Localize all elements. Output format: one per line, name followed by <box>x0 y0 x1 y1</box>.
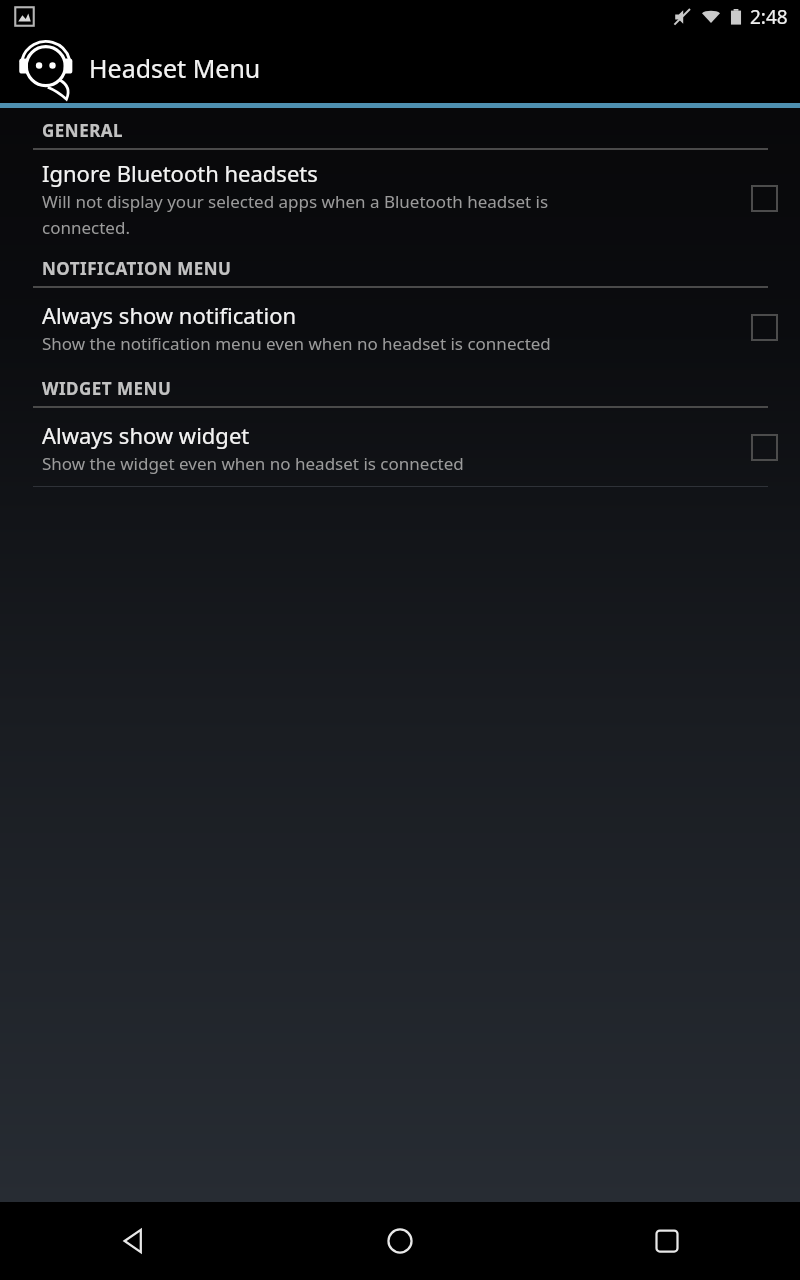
staticText: Show the notification menu even when no … <box>42 332 551 355</box>
button[interactable]: Always show notification <box>0 288 800 366</box>
staticText: Show the widget even when no headset is … <box>42 452 464 475</box>
staticText: Ignore Bluetooth headsets <box>42 158 318 188</box>
button[interactable]: Home <box>363 1204 437 1278</box>
staticText: Headset Menu <box>89 51 261 85</box>
button[interactable]: Always show widget <box>0 408 800 486</box>
staticText: 2:48 <box>750 4 788 30</box>
button[interactable]: Ignore Bluetooth headsets <box>0 150 800 246</box>
staticText: Will not display your selected apps when… <box>42 190 549 239</box>
staticText: GENERAL <box>42 119 124 142</box>
staticText: NOTIFICATION MENU <box>42 257 232 280</box>
staticText: WIDGET MENU <box>42 377 172 400</box>
staticText: Always show notification <box>42 300 297 330</box>
staticText: Always show widget <box>42 420 250 450</box>
button[interactable]: Recent apps <box>630 1204 704 1278</box>
button[interactable]: Back <box>96 1204 170 1278</box>
